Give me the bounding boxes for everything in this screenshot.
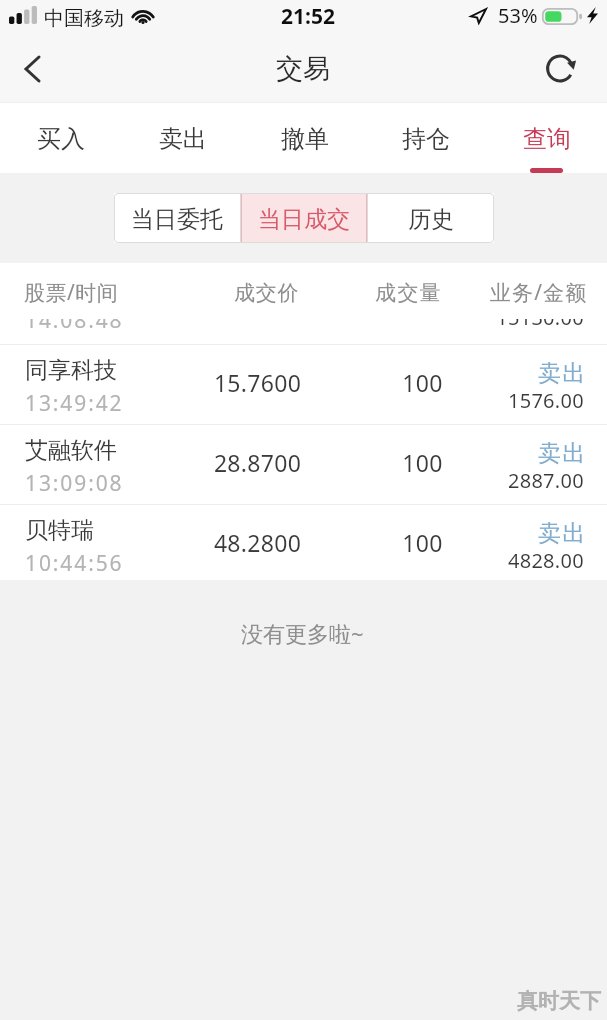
- staticText: 53%: [498, 2, 538, 29]
- button[interactable]: 同享科技: [0, 344, 607, 424]
- staticText: 4828.00: [400, 547, 584, 574]
- staticText: 卖出: [400, 359, 587, 388]
- staticText: 1576.00: [400, 387, 584, 414]
- staticText: 业务/金额: [490, 278, 588, 307]
- staticText: 当日委托: [131, 205, 223, 234]
- staticText: 100: [363, 527, 482, 558]
- staticText: 15130.00: [400, 319, 584, 329]
- button[interactable]: 贝特瑞: [0, 504, 607, 580]
- button[interactable]: 撤单: [244, 103, 365, 173]
- staticText: 艾融软件: [25, 436, 117, 465]
- staticText: 13:49:42: [25, 389, 124, 418]
- staticText: 历史: [408, 205, 454, 234]
- staticText: 21:52: [281, 2, 335, 31]
- button[interactable]: 查询: [486, 103, 607, 173]
- button[interactable]: 卖出: [122, 103, 244, 173]
- staticText: 真时天下: [517, 988, 601, 1014]
- staticText: 股票/时间: [24, 278, 119, 307]
- button[interactable]: Refresh: [528, 36, 592, 102]
- staticText: 2887.00: [400, 467, 584, 494]
- staticText: 持仓: [402, 124, 450, 154]
- staticText: 成交价: [234, 280, 300, 306]
- staticText: 当日成交: [258, 205, 350, 234]
- staticText: 15.7600: [176, 367, 339, 398]
- staticText: 查询: [523, 124, 571, 154]
- button[interactable]: 买入: [0, 103, 122, 173]
- staticText: 48.2800: [176, 527, 339, 558]
- staticText: 交易: [276, 52, 330, 86]
- staticText: 成交量: [375, 280, 443, 306]
- staticText: 卖出: [400, 439, 587, 468]
- staticText: 28.8700: [176, 447, 339, 478]
- staticText: 买入: [37, 124, 85, 154]
- staticText: 卖出: [159, 124, 207, 154]
- button[interactable]: Back: [0, 36, 64, 102]
- button[interactable]: 艾融软件: [0, 424, 607, 504]
- staticText: 100: [363, 367, 482, 398]
- staticText: 没有更多啦~: [241, 618, 364, 648]
- button[interactable]: 持仓: [365, 103, 486, 173]
- staticText: 10:44:56: [25, 549, 124, 578]
- button[interactable]: 当日委托: [114, 193, 240, 243]
- button[interactable]: 当日成交: [241, 193, 367, 243]
- staticText: 13:09:08: [25, 469, 124, 498]
- staticText: 14:08:48: [25, 319, 124, 331]
- staticText: 撤单: [281, 124, 329, 154]
- staticText: 同享科技: [25, 356, 117, 385]
- staticText: 卖出: [400, 519, 587, 548]
- staticText: 100: [363, 447, 482, 478]
- button[interactable]: 历史: [368, 193, 494, 243]
- staticText: 中国移动: [44, 6, 124, 31]
- staticText: 贝特瑞: [25, 516, 94, 545]
